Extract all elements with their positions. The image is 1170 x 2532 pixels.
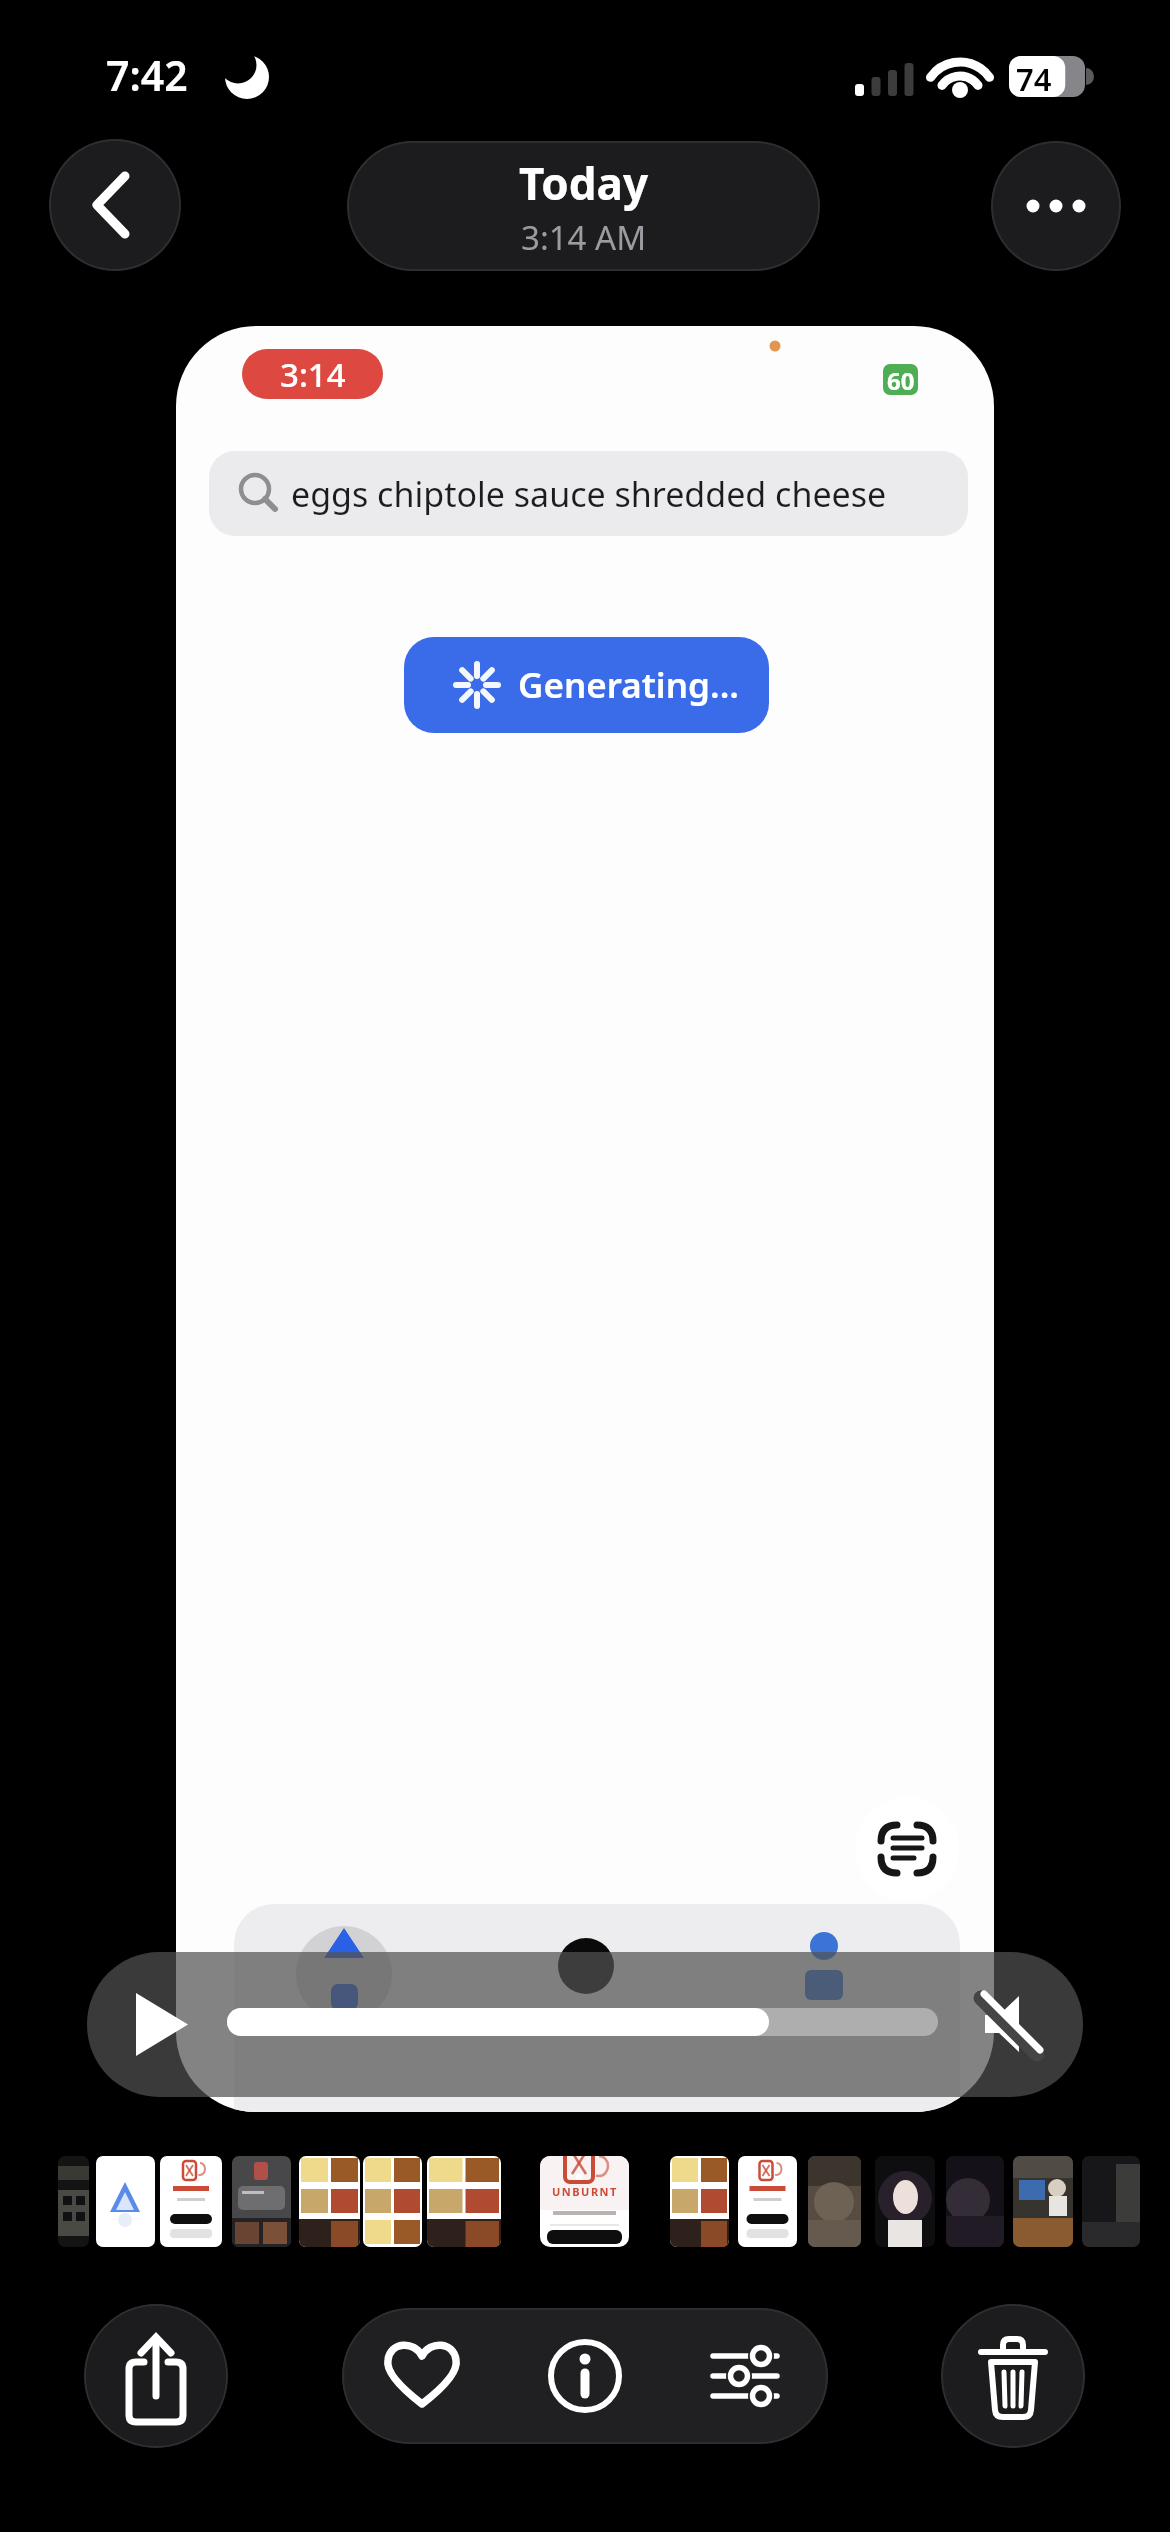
button[interactable]: Today [347,141,820,271]
button[interactable] [372,2326,472,2426]
staticText: 7:42 [106,47,188,103]
button[interactable] [670,2156,729,2247]
button[interactable] [991,141,1121,271]
staticText: Generating... [518,661,739,709]
button[interactable] [946,2156,1004,2247]
button[interactable] [855,1797,959,1901]
staticText: eggs chiptole sauce shredded cheese [291,471,887,517]
button[interactable] [875,2156,935,2247]
button[interactable] [299,2156,360,2247]
staticText: 74 [1016,58,1052,98]
button[interactable] [232,2156,291,2247]
button[interactable] [941,2304,1085,2448]
button[interactable]: Generating... [404,637,769,733]
button[interactable] [96,2156,155,2247]
button[interactable] [1082,2156,1140,2247]
button[interactable] [160,2156,222,2247]
button[interactable] [1013,2156,1073,2247]
button[interactable] [695,2326,795,2426]
staticText: Today [519,153,649,213]
button[interactable]: eggs chiptole sauce shredded cheese [209,451,968,536]
button[interactable] [84,2304,228,2448]
button[interactable] [427,2156,501,2247]
staticText: 60 [887,364,915,395]
button[interactable] [808,2156,861,2247]
button[interactable]: UNBURNT [540,2156,629,2247]
staticText: 3:14 [280,352,346,397]
staticText: 3:14 AM [521,215,647,260]
button[interactable] [87,1952,1083,2097]
button[interactable] [58,2156,89,2247]
button[interactable] [535,2326,635,2426]
button[interactable] [738,2156,797,2247]
button[interactable] [363,2156,422,2247]
staticText: UNBURNT [552,2184,618,2199]
button[interactable] [49,139,181,271]
